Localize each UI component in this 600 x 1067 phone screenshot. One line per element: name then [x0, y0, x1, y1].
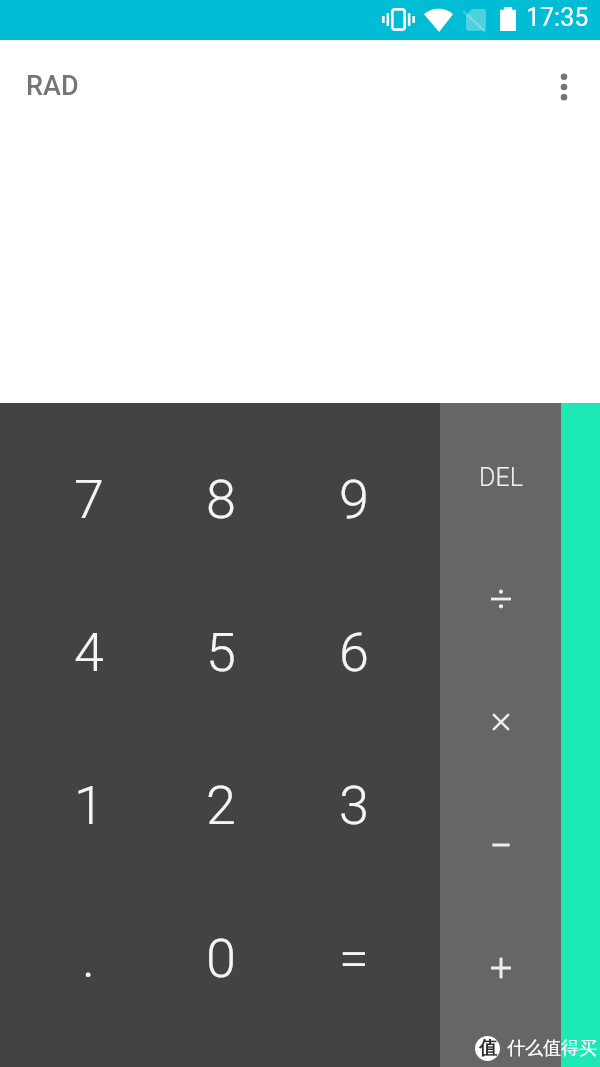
- other: Minus: [490, 834, 512, 856]
- button[interactable]: Delete: [440, 414, 561, 537]
- staticText: 8: [206, 468, 236, 531]
- button[interactable]: Divide: [440, 537, 561, 660]
- staticText: 17:35: [526, 3, 589, 32]
- button[interactable]: 9: [287, 423, 420, 576]
- button[interactable]: 4: [22, 576, 155, 729]
- button[interactable]: 0: [154, 882, 287, 1035]
- button[interactable]: 5: [154, 576, 287, 729]
- button[interactable]: 6: [287, 576, 420, 729]
- button[interactable]: 3: [287, 729, 420, 882]
- staticText: 值: [479, 1037, 497, 1060]
- button[interactable]: 1: [22, 729, 155, 882]
- staticText: 3: [339, 774, 369, 837]
- button[interactable]: 2: [154, 729, 287, 882]
- staticText: 什么值得买: [507, 1037, 597, 1060]
- staticText: 7: [74, 468, 104, 531]
- staticText: 0: [206, 927, 236, 990]
- button[interactable]: 7: [22, 423, 155, 576]
- staticText: DEL: [479, 463, 523, 492]
- button[interactable]: .: [22, 882, 155, 1035]
- button[interactable]: Multiply: [440, 660, 561, 783]
- staticText: 6: [339, 621, 369, 684]
- staticText: 9: [339, 468, 369, 531]
- other: Divide: [490, 588, 512, 610]
- other: Plus: [490, 957, 512, 979]
- button[interactable]: Plus: [440, 906, 561, 1029]
- button[interactable]: More options: [540, 63, 588, 111]
- staticText: 1: [74, 774, 104, 837]
- button[interactable]: Minus: [440, 783, 561, 906]
- staticText: 4: [74, 621, 104, 684]
- staticText: =: [339, 927, 369, 990]
- staticText: RAD: [26, 70, 79, 102]
- other: Multiply: [490, 711, 512, 733]
- button[interactable]: =: [287, 882, 420, 1035]
- staticText: 5: [206, 621, 236, 684]
- button[interactable]: 8: [154, 423, 287, 576]
- staticText: .: [82, 927, 95, 990]
- other: Delete: [479, 463, 523, 492]
- staticText: 2: [206, 774, 236, 837]
